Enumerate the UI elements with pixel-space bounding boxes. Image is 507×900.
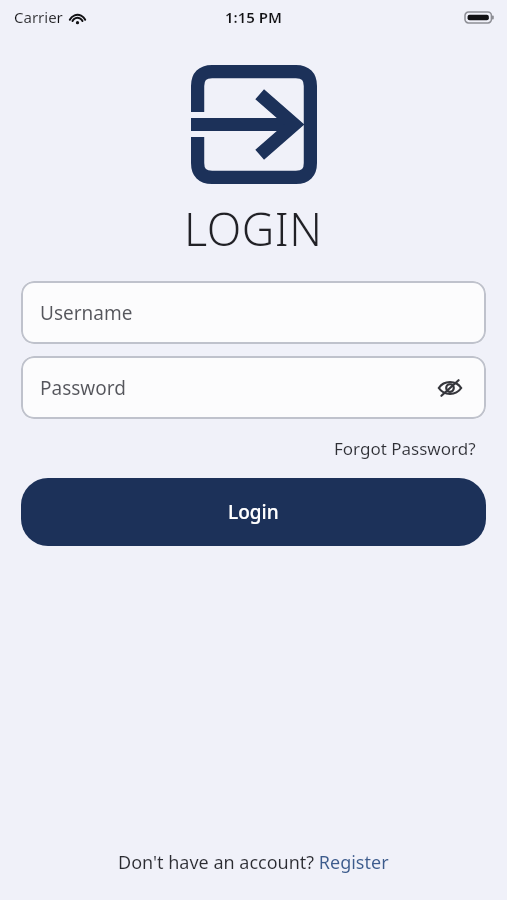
button[interactable]: Login bbox=[21, 478, 486, 546]
staticText: Login bbox=[228, 499, 279, 525]
staticText: LOGIN bbox=[184, 198, 323, 259]
button[interactable]: Toggle password visibility bbox=[430, 368, 470, 408]
button[interactable]: Username bbox=[21, 281, 486, 344]
staticText: Password bbox=[40, 375, 126, 401]
staticText: 1:15 PM bbox=[225, 7, 282, 27]
button[interactable]: Don't have an account? Register bbox=[114, 847, 393, 878]
staticText: Username bbox=[40, 300, 133, 326]
staticText: Don't have an account? Register bbox=[118, 850, 389, 875]
staticText: Forgot Password? bbox=[334, 437, 476, 460]
button[interactable]: Forgot Password? bbox=[332, 435, 478, 462]
staticText: Carrier bbox=[14, 7, 63, 27]
button[interactable]: Password bbox=[21, 356, 486, 419]
